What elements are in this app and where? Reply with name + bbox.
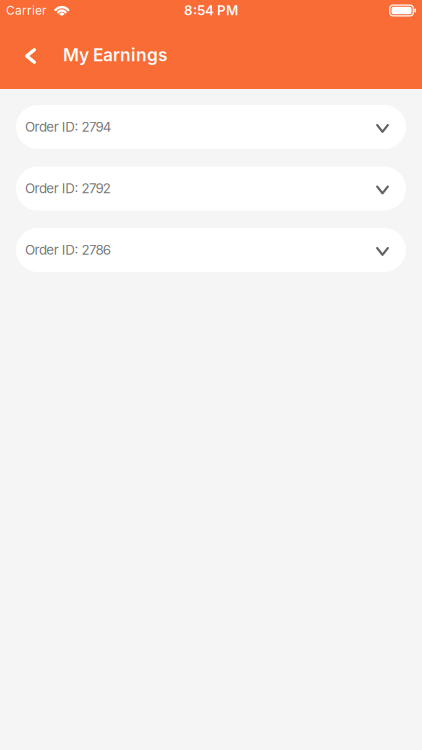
staticText: Order ID: 2786 (25, 242, 111, 258)
button[interactable]: Order ID: 2794 (16, 105, 406, 149)
staticText: Order ID: 2794 (25, 119, 112, 135)
staticText: Carrier (6, 3, 47, 18)
button[interactable]: Back (0, 24, 46, 88)
staticText: Order ID: 2792 (25, 181, 111, 196)
button[interactable]: Order ID: 2786 (16, 228, 406, 272)
staticText: My Earnings (63, 45, 168, 65)
button[interactable]: Order ID: 2792 (16, 166, 406, 210)
staticText: 8:54 PM (184, 3, 238, 18)
